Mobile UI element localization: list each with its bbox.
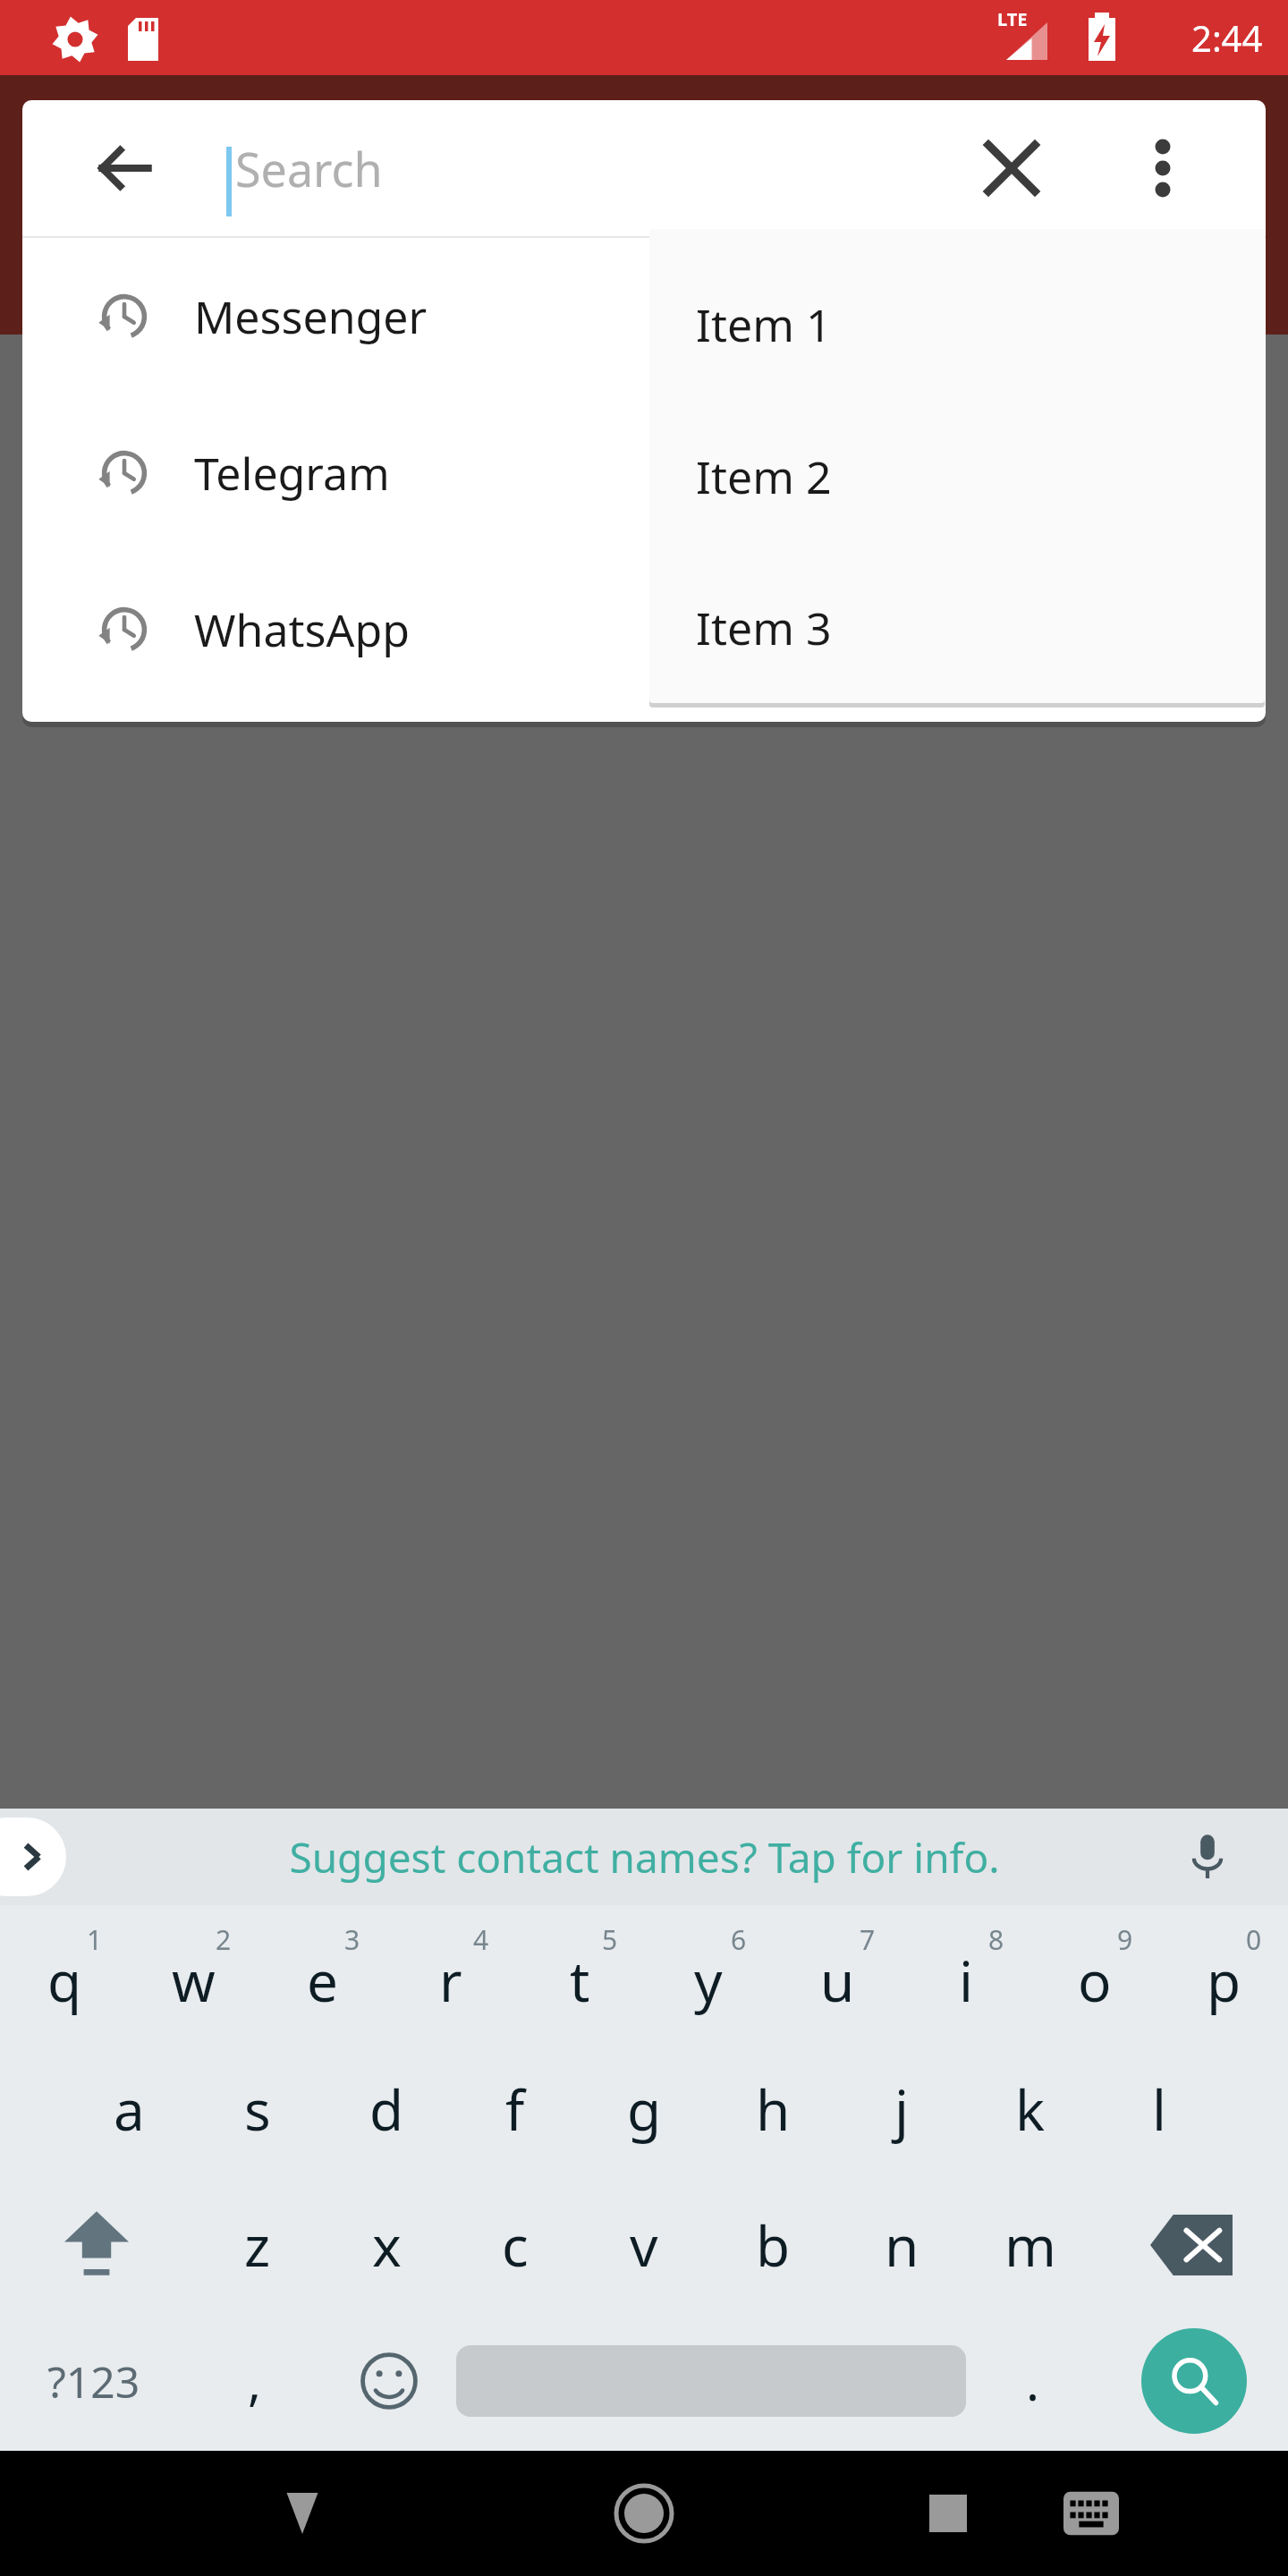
staticText: u	[820, 1943, 855, 2018]
button[interactable]: Item 2	[649, 401, 1265, 553]
staticText: m	[1004, 2207, 1056, 2283]
button[interactable]: 8	[902, 1905, 1030, 2041]
staticText: r	[439, 1943, 462, 2018]
button[interactable]: Item 1	[649, 249, 1265, 401]
button[interactable]: Hide keyboard	[249, 2460, 356, 2567]
staticText: j	[894, 2072, 909, 2147]
staticText: d	[369, 2072, 404, 2147]
staticText: ?123	[47, 2352, 140, 2411]
staticText: f	[505, 2072, 525, 2147]
button[interactable]: v	[580, 2177, 708, 2313]
button[interactable]: m	[966, 2177, 1095, 2313]
button[interactable]: Home	[590, 2460, 698, 2567]
button[interactable]: h	[708, 2041, 837, 2177]
button[interactable]: 2	[129, 1905, 258, 2041]
staticText: o	[1078, 1943, 1112, 2018]
staticText: k	[1015, 2072, 1046, 2147]
staticText: 9	[1117, 1921, 1133, 1958]
staticText: 8	[988, 1921, 1004, 1958]
button[interactable]: 3	[258, 1905, 386, 2041]
staticText: Item 3	[696, 597, 832, 658]
staticText: Messenger	[194, 286, 428, 347]
staticText: Suggest contact names? Tap for info.	[289, 1829, 1000, 1885]
staticText: b	[756, 2207, 791, 2283]
button[interactable]: 6	[644, 1905, 773, 2041]
button[interactable]: Emoji	[322, 2313, 456, 2449]
button[interactable]: Voice input	[1165, 1814, 1250, 1900]
staticText: s	[244, 2072, 271, 2147]
staticText: e	[307, 1943, 338, 2018]
staticText: .	[1026, 2347, 1040, 2415]
button[interactable]: Suggest contact names? Tap for info.	[289, 1829, 1000, 1885]
staticText: 2:44	[1191, 13, 1263, 62]
button[interactable]: d	[322, 2041, 451, 2177]
staticText: 0	[1246, 1921, 1262, 1958]
button[interactable]: Messenger	[22, 238, 1266, 394]
button[interactable]: l	[1095, 2041, 1224, 2177]
button[interactable]: Item 3	[649, 553, 1265, 703]
staticText: 5	[602, 1921, 618, 1958]
button[interactable]: 9	[1030, 1905, 1159, 2041]
button[interactable]: WhatsApp	[22, 551, 1266, 708]
staticText: WhatsApp	[194, 599, 410, 660]
button[interactable]: ,	[188, 2313, 322, 2449]
button[interactable]: n	[837, 2177, 966, 2313]
button[interactable]: x	[322, 2177, 451, 2313]
button[interactable]: Back	[74, 117, 176, 219]
staticText: z	[244, 2207, 271, 2283]
button[interactable]: f	[451, 2041, 580, 2177]
button[interactable]: g	[580, 2041, 708, 2177]
staticText: Search	[235, 137, 383, 200]
staticText: 7	[860, 1921, 876, 1958]
button[interactable]: s	[193, 2041, 322, 2177]
staticText: 4	[473, 1921, 489, 1958]
staticText: n	[885, 2207, 919, 2283]
staticText: ,	[248, 2347, 262, 2415]
staticText: a	[114, 2072, 145, 2147]
staticText: i	[959, 1943, 973, 2018]
button[interactable]: Expand suggestions	[0, 1818, 66, 1896]
button[interactable]: Backspace	[1095, 2177, 1288, 2313]
staticText: LTE	[997, 7, 1028, 31]
button[interactable]: More options	[1112, 117, 1214, 219]
staticText: t	[570, 1943, 590, 2018]
staticText: v	[630, 2207, 658, 2283]
button[interactable]: Shift	[0, 2177, 193, 2313]
button[interactable]: z	[193, 2177, 322, 2313]
staticText: Telegram	[194, 443, 390, 504]
button[interactable]	[456, 2345, 966, 2417]
staticText: Item 2	[696, 446, 832, 507]
button[interactable]: Recents	[894, 2460, 1002, 2567]
staticText: w	[172, 1943, 216, 2018]
staticText: 6	[731, 1921, 747, 1958]
button[interactable]: 0	[1159, 1905, 1288, 2041]
button[interactable]: a	[64, 2041, 193, 2177]
staticText: p	[1207, 1943, 1241, 2018]
staticText: g	[627, 2072, 662, 2147]
staticText: x	[372, 2207, 402, 2283]
button[interactable]: ?123	[0, 2313, 188, 2449]
staticText: Item 1	[696, 294, 832, 355]
button[interactable]: .	[966, 2313, 1100, 2449]
staticText: 3	[344, 1921, 360, 1958]
button[interactable]: c	[451, 2177, 580, 2313]
button[interactable]: j	[837, 2041, 966, 2177]
button[interactable]: Change keyboard	[1038, 2460, 1145, 2567]
button[interactable]: 1	[0, 1905, 129, 2041]
button[interactable]: 7	[773, 1905, 902, 2041]
button[interactable]: 5	[515, 1905, 644, 2041]
staticText: c	[502, 2207, 529, 2283]
staticText: y	[694, 1943, 723, 2018]
button[interactable]: Clear	[958, 114, 1065, 222]
button[interactable]: k	[966, 2041, 1095, 2177]
staticText: h	[756, 2072, 791, 2147]
button[interactable]: 4	[386, 1905, 515, 2041]
staticText: 1	[87, 1921, 103, 1958]
button[interactable]: Search	[1141, 2328, 1247, 2434]
other: Space	[456, 2345, 966, 2417]
staticText: q	[47, 1943, 82, 2018]
button[interactable]: b	[708, 2177, 837, 2313]
staticText: 2	[216, 1921, 232, 1958]
button[interactable]: Telegram	[22, 394, 1266, 551]
staticText: l	[1152, 2072, 1166, 2147]
